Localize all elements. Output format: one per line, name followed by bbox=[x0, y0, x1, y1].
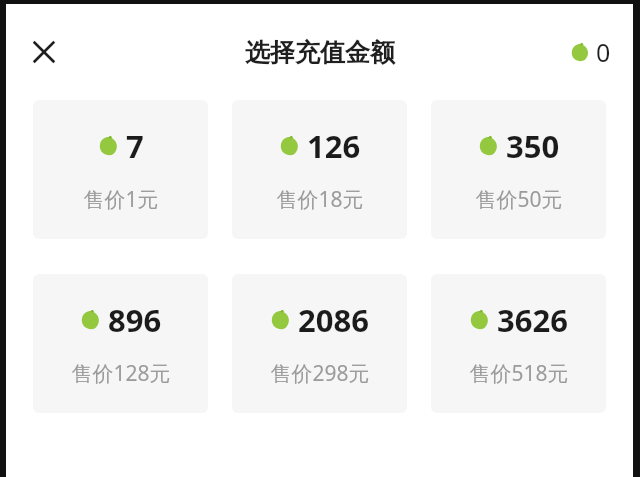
button[interactable]: 7 bbox=[33, 100, 208, 239]
button[interactable]: Close bbox=[22, 30, 66, 74]
staticText: 3626 bbox=[497, 299, 568, 341]
staticText: 896 bbox=[108, 299, 162, 341]
staticText: 0 bbox=[596, 35, 611, 69]
staticText: 选择充值金额 bbox=[245, 37, 395, 68]
staticText: 126 bbox=[307, 125, 361, 167]
button[interactable]: 350 bbox=[431, 100, 606, 239]
button[interactable]: 896 bbox=[33, 274, 208, 413]
staticText: 售价518元 bbox=[469, 359, 569, 388]
button[interactable]: 3626 bbox=[431, 274, 606, 413]
staticText: 350 bbox=[506, 125, 560, 167]
button[interactable]: 126 bbox=[232, 100, 407, 239]
staticText: 售价1元 bbox=[83, 185, 159, 214]
button[interactable]: 0 bbox=[571, 35, 611, 69]
staticText: 售价50元 bbox=[475, 185, 563, 214]
staticText: 7 bbox=[126, 125, 144, 167]
staticText: 售价18元 bbox=[276, 185, 364, 214]
staticText: 售价128元 bbox=[71, 359, 171, 388]
staticText: 售价298元 bbox=[270, 359, 370, 388]
button[interactable]: 2086 bbox=[232, 274, 407, 413]
staticText: 2086 bbox=[298, 299, 369, 341]
